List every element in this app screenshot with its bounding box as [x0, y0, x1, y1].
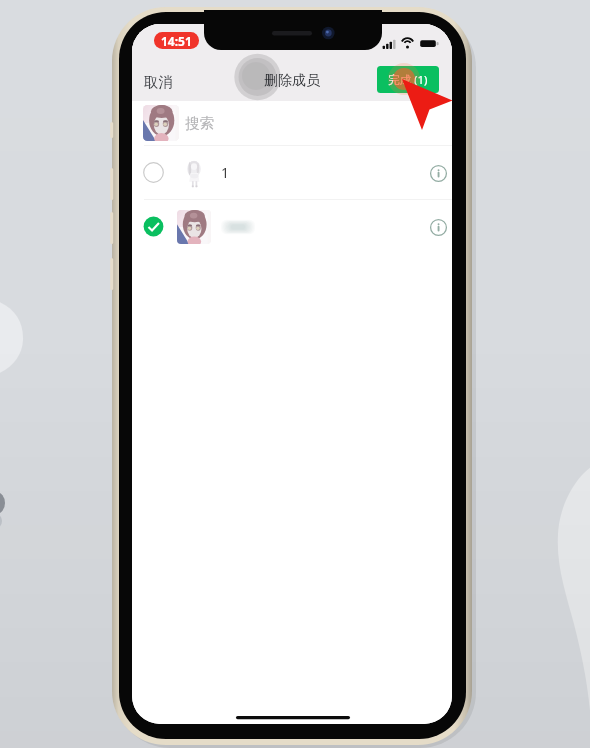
staticText: 删除成员 [264, 72, 320, 90]
button[interactable]: 取消 [139, 68, 178, 96]
button[interactable]: 1 [132, 146, 452, 199]
staticText: 搜索 [185, 114, 214, 132]
button[interactable]: Member info [132, 200, 452, 253]
button[interactable]: Member info [425, 214, 451, 240]
staticText: 取消 [144, 73, 173, 91]
button[interactable]: 完成 (1) [377, 66, 439, 93]
staticText: 14:51 [161, 33, 192, 49]
button[interactable]: 搜索 [132, 101, 452, 145]
staticText: 完成 (1) [388, 72, 428, 88]
button[interactable]: Member info [425, 160, 451, 186]
staticText: 1 [221, 163, 230, 182]
